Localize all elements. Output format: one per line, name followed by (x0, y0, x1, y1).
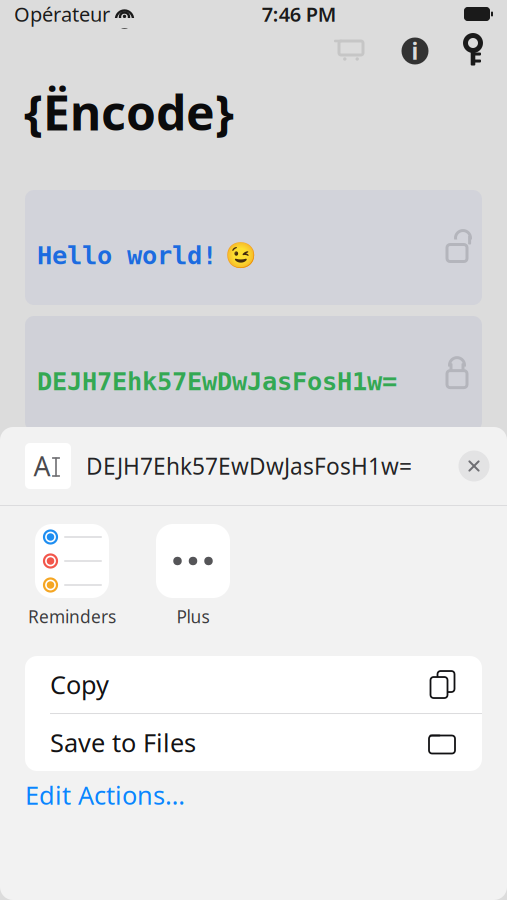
staticText: Save to Files (50, 726, 196, 759)
button[interactable]: Close (452, 444, 496, 488)
staticText: i (411, 36, 418, 66)
staticText: DEJH7Ehk57EwDwJasFosH1w= (86, 451, 412, 481)
staticText: Plus (176, 605, 209, 628)
button[interactable]: Copy (25, 656, 482, 713)
button[interactable]: Key (453, 29, 493, 73)
staticText: Copy (50, 668, 109, 701)
staticText: A (33, 448, 50, 484)
staticText: {Ëncode} (24, 80, 234, 144)
button[interactable]: Information (391, 29, 439, 73)
button[interactable]: Save to Files (25, 714, 482, 771)
button[interactable]: Store (325, 29, 373, 73)
staticText: 😉 (225, 241, 257, 270)
staticText: DEJH7Ehk57EwDwJasFosH1w= (37, 367, 397, 396)
button[interactable]: Plus (156, 524, 230, 628)
button[interactable]: Reminders (28, 524, 116, 628)
button[interactable]: Edit Actions… (0, 771, 507, 819)
staticText: Opérateur (14, 1, 110, 27)
staticText: 7:46 PM (262, 1, 337, 27)
staticText: Reminders (28, 605, 116, 628)
staticText: Edit Actions… (25, 778, 185, 812)
staticText: Hello world! (37, 241, 217, 270)
